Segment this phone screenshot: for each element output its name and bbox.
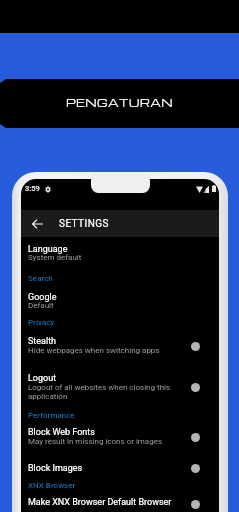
staticText: XNX Browser xyxy=(28,481,76,490)
button[interactable]: Block Images xyxy=(28,463,83,474)
staticText: Privacy xyxy=(28,318,55,327)
staticText: Logout of all websites when closing this xyxy=(28,383,171,392)
staticText: Logout xyxy=(28,373,57,384)
button[interactable]: Block Images xyxy=(191,464,200,473)
button[interactable]: Logout xyxy=(191,383,200,392)
button[interactable]: Stealth xyxy=(28,336,57,347)
button[interactable]: Back xyxy=(28,215,46,233)
staticText: May result in missing icons or images xyxy=(28,437,163,446)
staticText: Google xyxy=(28,292,57,303)
staticText: Default xyxy=(28,301,54,310)
button[interactable]: Google xyxy=(28,292,57,303)
button[interactable]: Stealth xyxy=(191,342,200,351)
staticText: Block Images xyxy=(28,463,83,474)
button[interactable]: Block Web Fonts xyxy=(191,433,200,442)
staticText: application xyxy=(28,392,68,401)
staticText: PENGATURAN xyxy=(0,95,239,109)
button[interactable]: Logout xyxy=(28,373,57,384)
staticText: System default xyxy=(28,253,82,262)
staticText: Performance xyxy=(28,411,75,420)
staticText: Hide webpages when switching apps xyxy=(28,346,160,355)
staticText: Stealth xyxy=(28,336,57,347)
staticText: Language xyxy=(28,244,68,255)
button[interactable]: Make XNX Browser Default Browser xyxy=(191,500,200,509)
staticText: Search xyxy=(28,274,53,283)
staticText: 3:59 xyxy=(25,184,40,193)
button[interactable]: Block Web Fonts xyxy=(28,427,95,438)
button[interactable]: Make XNX Browser Default Browser xyxy=(28,497,172,508)
button[interactable]: Language xyxy=(28,244,68,255)
staticText: Make XNX Browser Default Browser xyxy=(28,497,172,508)
staticText: Block Web Fonts xyxy=(28,427,95,438)
staticText: SETTINGS xyxy=(59,218,109,230)
